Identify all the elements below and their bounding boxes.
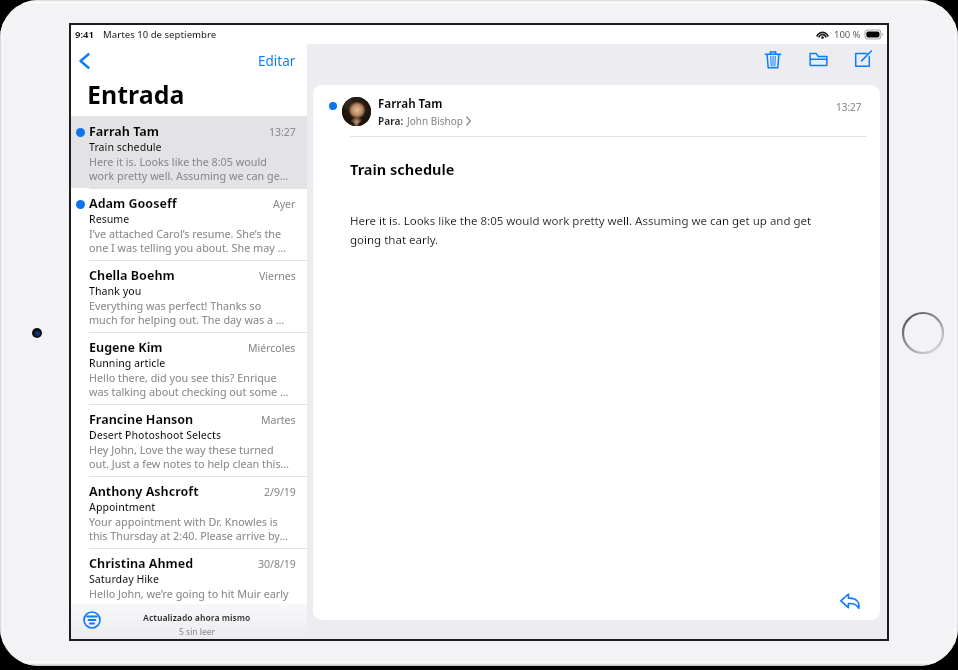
staticText: Here it is. Looks like the 8:05 would wo… [89, 154, 290, 183]
staticText: 9:41 [75, 28, 94, 41]
staticText: Anthony Ashcroft [89, 483, 199, 500]
button[interactable]: Eugene Kim [71, 332, 307, 404]
staticText: 13:27 [836, 100, 862, 114]
staticText: Eugene Kim [89, 339, 163, 356]
button[interactable]: Adam Gooseff [71, 188, 307, 260]
staticText: Francine Hanson [89, 411, 194, 428]
staticText: Hello there, did you see this? Enrique w… [89, 370, 290, 399]
button[interactable]: Reply [836, 587, 864, 615]
button[interactable]: Francine Hanson [71, 404, 307, 476]
button[interactable]: Editar [254, 47, 300, 75]
staticText: Christina Ahmed [89, 555, 194, 572]
staticText: 5 sin leer [179, 626, 216, 635]
button[interactable]: Chella Boehm [71, 260, 307, 332]
staticText: Adam Gooseff [89, 195, 177, 212]
button[interactable]: Compose [848, 45, 876, 73]
staticText: 30/8/19 [258, 557, 296, 571]
staticText: Your appointment with Dr. Knowles is thi… [89, 514, 290, 543]
staticText: Saturday Hike [89, 572, 159, 586]
staticText: Hey John, Love the way these turned out.… [89, 442, 290, 471]
staticText: Editar [258, 52, 296, 70]
staticText: Everything was perfect! Thanks so much f… [89, 298, 290, 327]
staticText: 100 % [834, 28, 861, 41]
staticText: John Bishop [407, 114, 463, 128]
staticText: I’ve attached Carol’s resume. She’s the … [89, 226, 290, 255]
staticText: Running article [89, 356, 166, 370]
staticText: Here it is. Looks like the 8:05 would wo… [350, 213, 834, 247]
staticText: 13:27 [269, 125, 296, 139]
staticText: Ayer [273, 197, 296, 211]
staticText: Martes 10 de septiembre [103, 28, 217, 41]
staticText: 2/9/19 [264, 485, 296, 499]
staticText: Desert Photoshoot Selects [89, 428, 222, 442]
staticText: Hello John, we’re going to hit Muir earl… [89, 586, 290, 601]
staticText: Actualizado ahora mismo [143, 612, 251, 624]
button[interactable]: Anthony Ashcroft [71, 476, 307, 548]
staticText: Appointment [89, 500, 156, 514]
staticText: Entrada [87, 77, 185, 111]
button[interactable]: Christina Ahmed [71, 548, 307, 604]
button[interactable]: Move to folder [804, 45, 832, 73]
staticText: Miércoles [248, 341, 296, 355]
staticText: Para: [378, 114, 404, 128]
staticText: Viernes [259, 269, 296, 283]
button[interactable]: Delete [759, 45, 787, 73]
staticText: Martes [261, 413, 296, 427]
button[interactable]: Back [72, 48, 98, 74]
staticText: Farrah Tam [89, 123, 160, 140]
staticText: Train schedule [89, 140, 162, 154]
staticText: Farrah Tam [378, 96, 443, 112]
staticText: Resume [89, 212, 130, 226]
staticText: Thank you [89, 284, 142, 298]
staticText: Train schedule [350, 159, 455, 179]
staticText: Chella Boehm [89, 267, 175, 284]
button[interactable]: Farrah Tam [71, 116, 307, 188]
button[interactable]: Filter [83, 611, 101, 629]
